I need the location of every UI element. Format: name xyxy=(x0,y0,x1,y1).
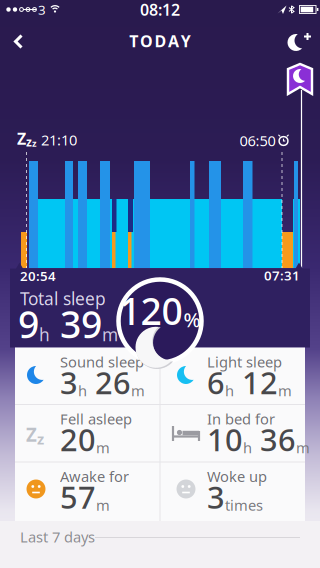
staticText: 07:31 xyxy=(264,266,300,284)
staticText: % xyxy=(183,306,200,333)
staticText: m xyxy=(131,381,145,400)
staticText: 3 xyxy=(60,362,78,403)
staticText: m xyxy=(296,438,310,457)
staticText: 57 xyxy=(60,476,96,517)
staticText: O xyxy=(140,30,153,52)
staticText: 120 xyxy=(119,286,182,335)
button[interactable]: Back xyxy=(0,24,36,59)
staticText: Awake for xyxy=(60,466,129,486)
staticText: T xyxy=(129,30,138,52)
staticText: h xyxy=(78,381,87,400)
staticText: Total sleep xyxy=(20,287,106,310)
staticText: m xyxy=(102,323,118,346)
staticText: h xyxy=(39,323,50,346)
staticText: 26 xyxy=(87,362,131,403)
staticText: Z xyxy=(17,128,26,149)
staticText: z xyxy=(37,429,44,448)
staticText: h xyxy=(243,438,252,457)
staticText: Sound sleep xyxy=(60,352,144,371)
staticText: 08:12 xyxy=(140,0,180,20)
staticText: m xyxy=(96,495,110,515)
staticText: m xyxy=(96,438,110,457)
button[interactable]: Add sleep xyxy=(279,23,315,60)
button[interactable]: Last 7 days xyxy=(0,521,320,555)
staticText: Fell asleep xyxy=(60,409,132,428)
staticText: Last 7 days xyxy=(20,527,95,546)
staticText: 21:10 xyxy=(37,130,77,149)
staticText: Light sleep xyxy=(207,352,282,371)
staticText: 3 xyxy=(38,1,46,18)
staticText: Woke up xyxy=(207,466,267,486)
staticText: D xyxy=(154,30,166,52)
staticText: 06:50 xyxy=(239,131,275,150)
staticText: m xyxy=(278,381,292,400)
staticText: Y xyxy=(181,30,191,52)
staticText: times xyxy=(225,495,263,515)
staticText: In bed for xyxy=(207,409,275,428)
staticText: 36 xyxy=(252,419,296,460)
staticText: 12 xyxy=(234,362,278,403)
staticText: A xyxy=(168,30,179,52)
staticText: 20:54 xyxy=(20,267,56,285)
staticText: 6 xyxy=(207,362,225,403)
staticText: z xyxy=(26,134,32,150)
staticText: z xyxy=(32,137,37,149)
staticText: Z xyxy=(26,422,37,447)
staticText: 10 xyxy=(207,419,243,460)
staticText: 9 xyxy=(18,299,39,349)
staticText: 3 xyxy=(207,476,225,517)
staticText: h xyxy=(225,381,234,400)
staticText: 20 xyxy=(60,419,96,460)
staticText: 39 xyxy=(50,299,102,349)
